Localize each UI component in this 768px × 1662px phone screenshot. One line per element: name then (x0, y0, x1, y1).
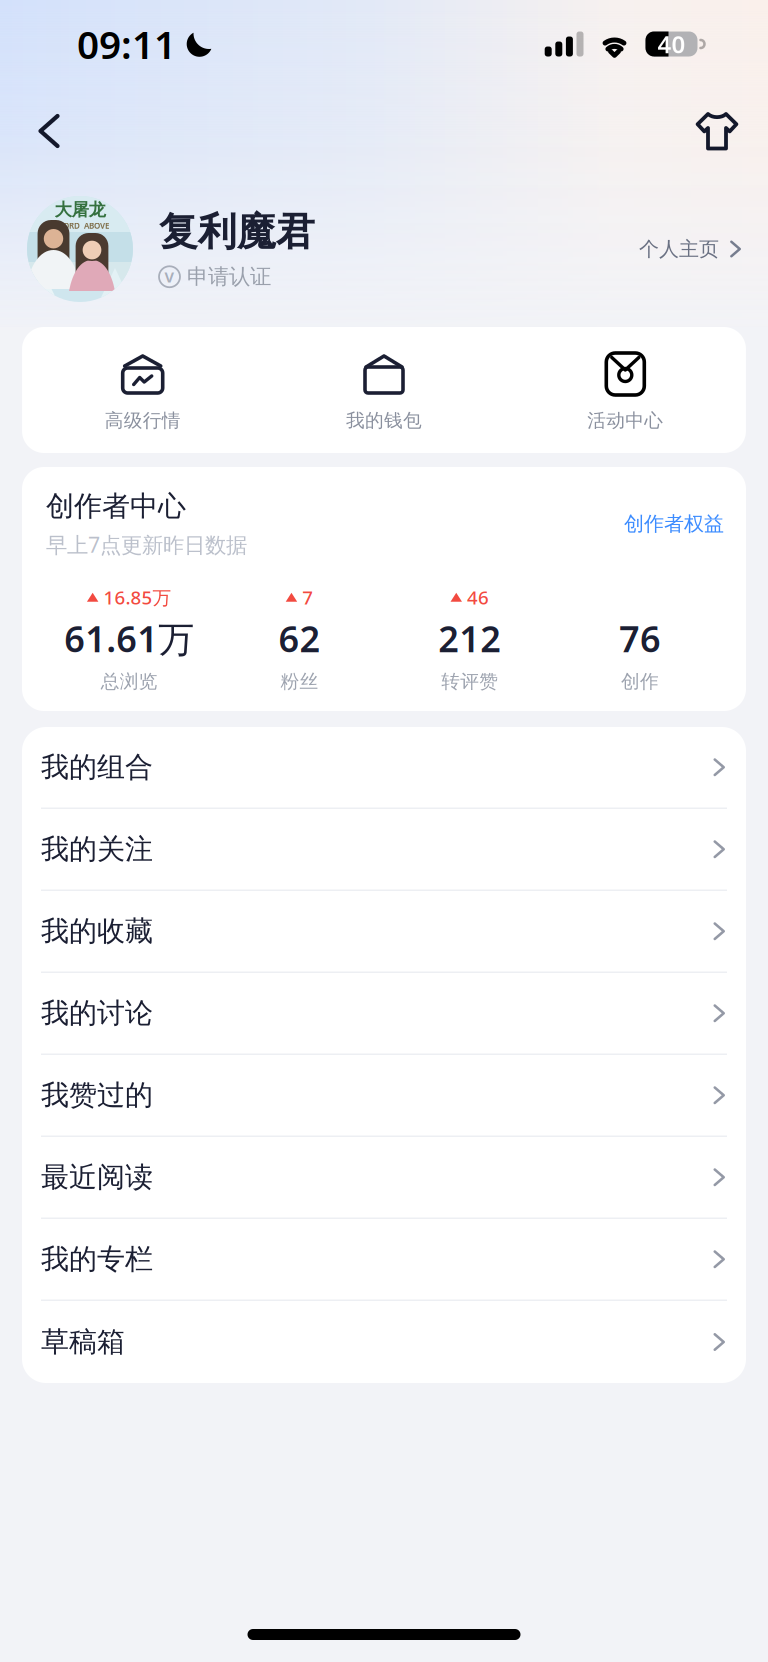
staticText: 创作者权益 (624, 512, 724, 536)
staticText: 大屠龙 (54, 199, 105, 220)
staticText: 早上7点更新昨日数据 (46, 530, 247, 559)
button[interactable]: 最近阅读 (22, 1137, 746, 1219)
staticText: 我的关注 (41, 832, 153, 866)
button[interactable]: 个人主页 (639, 223, 741, 275)
button[interactable]: 我的关注 (22, 809, 746, 891)
staticText: 转评赞 (441, 670, 498, 693)
staticText: 76 (619, 614, 661, 662)
staticText: 申请认证 (187, 264, 271, 290)
button[interactable]: 活动中心 (505, 327, 746, 453)
staticText: 创作 (621, 670, 659, 693)
button[interactable]: 高级行情 (22, 327, 263, 453)
staticText: 我的收藏 (41, 914, 153, 948)
staticText: 我赞过的 (41, 1078, 153, 1112)
button[interactable]: 我的收藏 (22, 891, 746, 973)
staticText: 61.61万 (64, 614, 194, 662)
staticText: 7 (302, 585, 313, 610)
staticText: 16.85万 (103, 585, 171, 610)
button[interactable]: 我的讨论 (22, 973, 746, 1055)
button[interactable]: 大屠龙 (27, 196, 315, 302)
button[interactable]: Back (18, 98, 80, 164)
staticText: 我的组合 (41, 750, 153, 784)
staticText: SWORD ABOVE (51, 220, 109, 231)
staticText: 62 (278, 614, 320, 662)
button[interactable]: Theme (686, 98, 748, 164)
staticText: 我的钱包 (346, 409, 422, 432)
staticText: 我的讨论 (41, 996, 153, 1030)
button[interactable]: 我的专栏 (22, 1219, 746, 1301)
button[interactable]: 我的钱包 (263, 327, 505, 453)
staticText: 46 (467, 585, 489, 610)
button[interactable]: 我的组合 (22, 727, 746, 809)
staticText: 复利魔君 (159, 208, 315, 256)
staticText: 我的专栏 (41, 1242, 153, 1276)
staticText: 40 (657, 28, 685, 60)
staticText: V (164, 267, 174, 286)
staticText: 个人主页 (639, 237, 719, 261)
staticText: 最近阅读 (41, 1160, 153, 1194)
staticText: 212 (438, 614, 501, 662)
staticText: 高级行情 (105, 409, 181, 432)
staticText: 总浏览 (101, 670, 158, 693)
staticText: 粉丝 (280, 670, 318, 693)
staticText: 09:11 (77, 18, 176, 70)
staticText: 创作者中心 (46, 489, 186, 523)
button[interactable]: 创作者权益 (624, 504, 724, 544)
staticText: 活动中心 (587, 409, 663, 432)
staticText: 草稿箱 (41, 1325, 125, 1359)
button[interactable]: 我赞过的 (22, 1055, 746, 1137)
button[interactable]: 草稿箱 (22, 1301, 746, 1383)
